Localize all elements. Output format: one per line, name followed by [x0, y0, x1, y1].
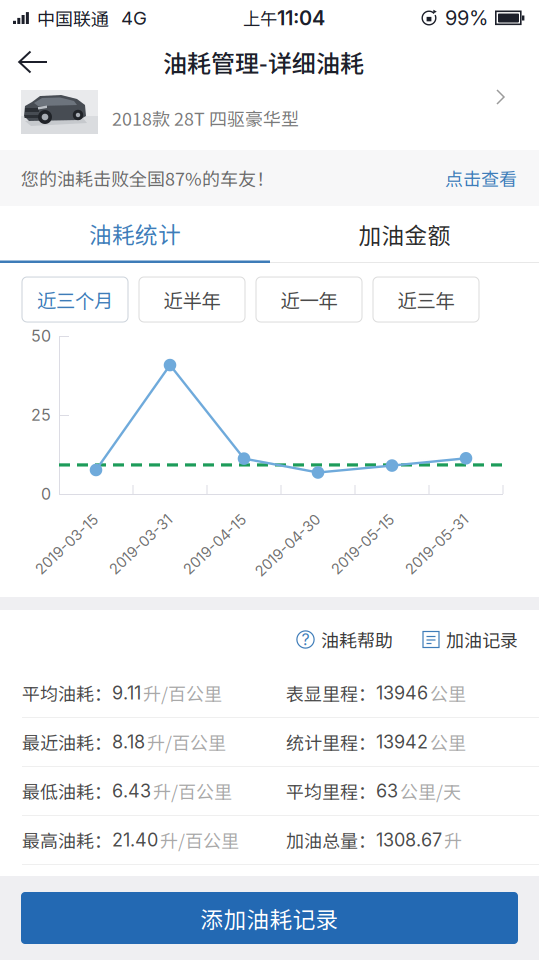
- staticText: 13946: [376, 682, 428, 704]
- staticText: 11:04: [277, 6, 325, 30]
- staticText: 加油总量：: [286, 827, 376, 853]
- button[interactable]: 点击查看: [445, 165, 517, 191]
- staticText: 2019-05-15: [312, 508, 392, 526]
- staticText: 表显里程：: [286, 680, 376, 706]
- staticText: 近三个月: [37, 285, 113, 313]
- staticText: 最近油耗：: [22, 729, 112, 755]
- staticText: 25: [31, 405, 51, 425]
- staticText: 公里: [430, 729, 466, 755]
- staticText: 油耗管理-详细油耗: [163, 45, 364, 79]
- button[interactable]: 近三年: [373, 277, 479, 322]
- button[interactable]: 近半年: [139, 277, 245, 322]
- button[interactable]: ?: [296, 626, 393, 653]
- staticText: 99%: [445, 6, 488, 30]
- staticText: 公里: [430, 680, 466, 706]
- staticText: 加油金额: [358, 218, 450, 250]
- staticText: 2019-03-31: [90, 508, 170, 526]
- staticText: 统计里程：: [286, 729, 376, 755]
- staticText: 0: [41, 484, 51, 504]
- staticText: 升/百公里: [160, 827, 239, 853]
- staticText: 最高油耗：: [22, 827, 112, 853]
- button[interactable]: 油耗统计: [0, 206, 270, 263]
- button[interactable]: 2018款 28T 四驱豪华型: [0, 88, 539, 150]
- staticText: 油耗帮助: [321, 626, 393, 653]
- staticText: 2019-03-15: [16, 508, 96, 526]
- staticText: 13942: [376, 731, 428, 753]
- staticText: 升: [444, 827, 462, 853]
- button[interactable]: 近三个月: [22, 277, 128, 322]
- staticText: 平均油耗：: [22, 680, 112, 706]
- staticText: 2019-05-31: [386, 508, 466, 526]
- button[interactable]: Back: [0, 37, 64, 87]
- staticText: 2019-04-15: [164, 508, 244, 526]
- staticText: 升/百公里: [143, 680, 222, 706]
- staticText: 升/百公里: [147, 729, 226, 755]
- staticText: 近一年: [280, 285, 337, 313]
- staticText: 油耗统计: [89, 217, 181, 250]
- staticText: 63: [376, 780, 398, 802]
- staticText: 最低油耗：: [22, 778, 112, 804]
- staticText: 近半年: [163, 285, 220, 313]
- button[interactable]: 加油记录: [422, 626, 518, 653]
- staticText: 平均里程：: [286, 778, 376, 804]
- staticText: 2019-04-30: [235, 508, 318, 526]
- staticText: 1308.67: [376, 829, 442, 851]
- staticText: 上午: [243, 5, 277, 31]
- staticText: 4G: [121, 7, 147, 29]
- staticText: 加油记录: [446, 626, 518, 653]
- staticText: 6.43: [112, 780, 151, 802]
- staticText: 9.11: [112, 682, 141, 704]
- button[interactable]: 添加油耗记录: [21, 892, 518, 944]
- staticText: 升/百公里: [153, 778, 232, 804]
- staticText: 8.18: [112, 731, 145, 753]
- staticText: 您的油耗击败全国87%的车友！: [21, 165, 274, 191]
- staticText: 2018款 28T 四驱豪华型: [112, 105, 299, 131]
- staticText: 50: [31, 326, 51, 346]
- button[interactable]: 加油金额: [270, 206, 539, 263]
- staticText: 近三年: [397, 285, 454, 313]
- staticText: 公里/天: [400, 778, 461, 804]
- staticText: ?: [301, 630, 309, 649]
- staticText: 中国联通: [37, 5, 109, 31]
- staticText: 添加油耗记录: [200, 902, 338, 934]
- staticText: 21.40: [112, 829, 158, 851]
- button[interactable]: 近一年: [256, 277, 362, 322]
- staticText: 点击查看: [445, 165, 517, 191]
